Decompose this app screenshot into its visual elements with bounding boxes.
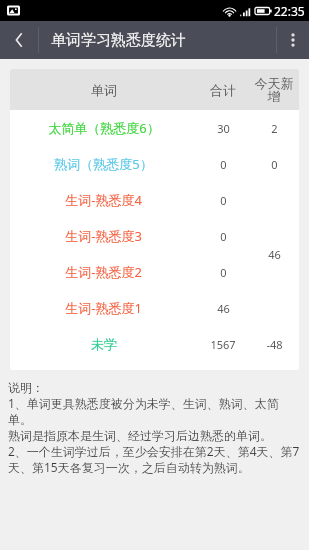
staticText: 46 xyxy=(268,247,281,262)
staticText: 0 xyxy=(220,229,227,244)
button[interactable]: 生词-熟悉度4 xyxy=(10,182,299,218)
staticText: 天、第15天各复习一次，之后自动转为熟词。 xyxy=(8,459,250,475)
staticText: 1、单词更具熟悉度被分为未学、生词、熟词、太简单。 xyxy=(8,395,301,428)
staticText: 单词学习熟悉度统计 xyxy=(51,31,276,50)
button[interactable]: 熟词（熟悉度5） xyxy=(10,146,299,182)
staticText: 生词-熟悉度2 xyxy=(65,263,142,281)
button[interactable]: 生词-熟悉度3 xyxy=(10,218,299,254)
staticText: 说明： xyxy=(8,380,44,395)
staticText: 未学 xyxy=(91,336,117,352)
staticText: 今天新增 xyxy=(249,75,299,105)
button[interactable]: 生词-熟悉度1 xyxy=(10,290,299,326)
staticText: 生词-熟悉度3 xyxy=(65,227,142,245)
staticText: 熟词是指原本是生词、经过学习后边熟悉的单词。 xyxy=(8,428,272,443)
staticText: 合计 xyxy=(210,82,236,98)
button[interactable]: More options xyxy=(277,21,309,59)
button[interactable]: 太简单（熟悉度6） xyxy=(10,110,299,146)
staticText: 单词 xyxy=(91,82,117,98)
staticText: 2、一个生词学过后，至少会安排在第2天、第4天、第7 xyxy=(8,443,300,459)
button[interactable]: 未学 xyxy=(10,326,299,362)
staticText: 0 xyxy=(220,157,227,172)
staticText: 0 xyxy=(220,265,227,280)
staticText: 太简单（熟悉度6） xyxy=(48,119,160,137)
staticText: 0 xyxy=(220,193,227,208)
staticText: 22:35 xyxy=(274,3,305,19)
staticText: 2 xyxy=(271,121,278,136)
button[interactable]: 生词-熟悉度2 xyxy=(10,254,299,290)
staticText: 46 xyxy=(217,301,230,316)
staticText: 熟词（熟悉度5） xyxy=(54,155,153,173)
staticText: -48 xyxy=(266,337,283,352)
staticText: 生词-熟悉度1 xyxy=(65,299,142,317)
staticText: 1567 xyxy=(210,337,236,352)
button[interactable]: Back xyxy=(0,21,38,59)
staticText: 0 xyxy=(271,157,278,172)
staticText: 30 xyxy=(217,121,230,136)
staticText: 生词-熟悉度4 xyxy=(65,191,142,209)
